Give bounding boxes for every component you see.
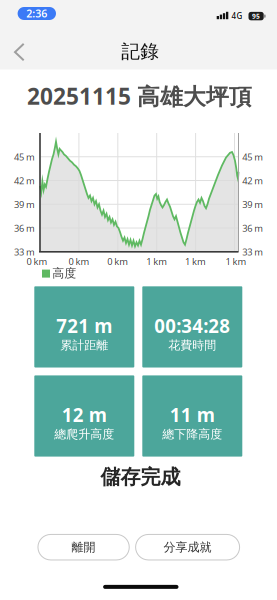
staticText: 12 m [62,402,107,427]
staticText: 分享成就 [164,540,212,554]
staticText: 1 km [185,255,206,268]
staticText: 4G [231,10,242,21]
staticText: 33 m [14,246,35,258]
staticText: 記錄 [121,40,159,63]
staticText: 36 m [14,222,35,234]
staticText: 42 m [14,174,35,187]
button[interactable]: 分享成就 [136,534,240,560]
staticText: 1 km [225,255,246,268]
staticText: 45 m [14,151,35,163]
staticText: 39 m [242,198,263,210]
staticText: 11 m [170,402,215,427]
staticText: 儲存完成 [100,465,180,489]
staticText: 20251115 高雄大坪頂 [27,81,252,111]
staticText: 95 [252,12,260,21]
staticText: 0 km [26,255,47,268]
staticText: 2:36 [26,6,47,20]
staticText: 33 m [242,246,263,258]
staticText: 總下降高度 [162,427,222,442]
staticText: 721 m [56,313,112,338]
staticText: 42 m [242,174,263,187]
staticText: 45 m [242,151,263,163]
staticText: 花費時間 [168,338,216,352]
staticText: 高度 [52,266,76,281]
staticText: 0 km [107,255,128,268]
staticText: 36 m [242,222,263,234]
button[interactable]: Back [4,38,34,66]
staticText: 0 km [68,255,89,268]
staticText: 00:34:28 [154,313,230,338]
staticText: 累計距離 [60,338,108,352]
button[interactable]: 離開 [38,534,129,560]
staticText: 離開 [72,540,96,554]
staticText: 總爬升高度 [54,427,114,442]
staticText: 1 km [146,255,167,268]
staticText: 39 m [14,198,35,210]
